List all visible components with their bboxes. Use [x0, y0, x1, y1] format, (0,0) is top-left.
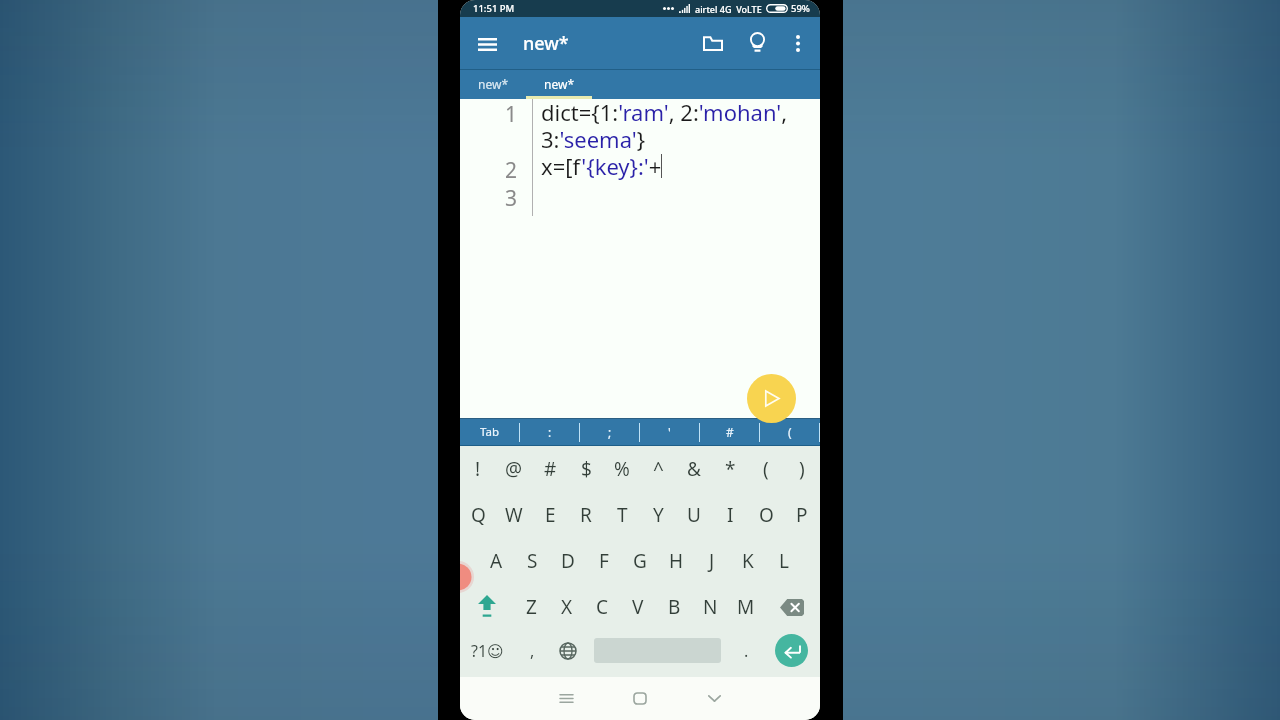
staticText: E — [545, 502, 556, 528]
button[interactable]: Hints — [738, 24, 776, 62]
button[interactable]: S — [514, 538, 550, 584]
button[interactable]: $ — [568, 446, 604, 492]
button[interactable]: V — [620, 584, 656, 630]
staticText: % — [614, 456, 630, 482]
button[interactable]: E — [532, 492, 568, 538]
button[interactable]: Open file — [694, 24, 732, 62]
button[interactable]: new* — [526, 69, 592, 99]
button[interactable]: # — [532, 446, 568, 492]
staticText: $ — [581, 456, 592, 482]
staticText: Tab — [480, 424, 499, 440]
button[interactable]: H — [658, 538, 694, 584]
staticText: : — [548, 424, 552, 440]
button[interactable]: Y — [640, 492, 676, 538]
staticText: F — [599, 548, 609, 574]
button[interactable]: F — [586, 538, 622, 584]
staticText: H — [669, 548, 684, 574]
button[interactable]: @ — [496, 446, 532, 492]
button[interactable]: O — [748, 492, 784, 538]
staticText: # — [726, 424, 734, 440]
staticText: T — [617, 502, 628, 528]
staticText: K — [742, 548, 754, 574]
button[interactable]: Q — [460, 492, 496, 538]
button[interactable]: D — [550, 538, 586, 584]
staticText: 59% — [791, 2, 810, 15]
button[interactable]: I — [712, 492, 748, 538]
staticText: G — [633, 548, 647, 574]
button[interactable]: ; — [580, 418, 639, 446]
button[interactable]: Hide keyboard — [677, 679, 751, 717]
staticText: S — [527, 548, 538, 574]
button[interactable]: Enter — [775, 634, 808, 667]
button[interactable]: Navigation menu — [471, 28, 503, 60]
button[interactable]: Home — [603, 679, 677, 717]
button[interactable]: ^ — [640, 446, 676, 492]
staticText: ( — [788, 424, 792, 440]
button[interactable]: # — [700, 418, 759, 446]
button[interactable]: X — [549, 584, 584, 630]
button[interactable]: P — [784, 492, 820, 538]
button[interactable]: L — [766, 538, 802, 584]
button[interactable]: ) — [784, 446, 820, 492]
button[interactable]: W — [496, 492, 532, 538]
staticText: , — [530, 640, 535, 662]
button[interactable]: R — [568, 492, 604, 538]
button[interactable]: K — [730, 538, 766, 584]
button[interactable]: B — [656, 584, 692, 630]
button[interactable]: & — [676, 446, 712, 492]
button[interactable]: , — [514, 627, 551, 674]
button[interactable]: Shift — [460, 584, 514, 630]
staticText: I — [727, 502, 734, 528]
button[interactable]: Backspace — [764, 584, 820, 630]
button[interactable]: More options — [782, 27, 814, 59]
button[interactable]: Change input language — [551, 627, 585, 674]
button[interactable]: ?1☺ — [460, 627, 514, 674]
staticText: A — [490, 548, 503, 574]
staticText: 1 2 3 — [505, 100, 518, 212]
staticText: R — [580, 502, 592, 528]
button[interactable]: ! — [460, 446, 496, 492]
staticText: W — [505, 502, 523, 528]
button[interactable]: Recent apps — [529, 679, 603, 717]
button[interactable]: Tab — [460, 418, 519, 446]
button[interactable]: ' — [640, 418, 699, 446]
button[interactable]: ( — [748, 446, 784, 492]
button[interactable]: ( — [760, 418, 819, 446]
staticText: Y — [653, 502, 664, 528]
staticText: 11:51 PM — [473, 2, 515, 15]
button[interactable]: J — [694, 538, 730, 584]
staticText: ! — [475, 456, 481, 482]
button[interactable]: : — [520, 418, 579, 446]
staticText: ) — [799, 456, 805, 482]
staticText: & — [687, 456, 701, 482]
button[interactable]: T — [604, 492, 640, 538]
staticText: U — [687, 502, 701, 528]
button[interactable]: C — [584, 584, 620, 630]
staticText: Z — [526, 594, 537, 620]
button[interactable]: * — [712, 446, 748, 492]
staticText: ?1☺ — [471, 640, 504, 662]
staticText: N — [703, 594, 718, 620]
button[interactable]: Z — [514, 584, 549, 630]
staticText: D — [561, 548, 575, 574]
staticText: airtel 4G VoLTE — [695, 3, 762, 15]
button[interactable]: A — [478, 538, 514, 584]
staticText: O — [759, 502, 774, 528]
button[interactable]: % — [604, 446, 640, 492]
staticText: P — [796, 502, 808, 528]
staticText: ( — [763, 456, 769, 482]
staticText: new* — [523, 31, 569, 56]
staticText: ; — [608, 424, 612, 440]
button[interactable]: Run — [747, 374, 796, 423]
button[interactable]: M — [728, 584, 764, 630]
staticText: V — [632, 594, 644, 620]
button[interactable]: G — [622, 538, 658, 584]
staticText: Q — [471, 502, 486, 528]
button[interactable]: new* — [460, 69, 526, 99]
button[interactable]: U — [676, 492, 712, 538]
staticText: M — [737, 594, 755, 620]
button[interactable]: N — [692, 584, 728, 630]
button[interactable]: . — [730, 627, 763, 674]
staticText: C — [596, 594, 609, 620]
